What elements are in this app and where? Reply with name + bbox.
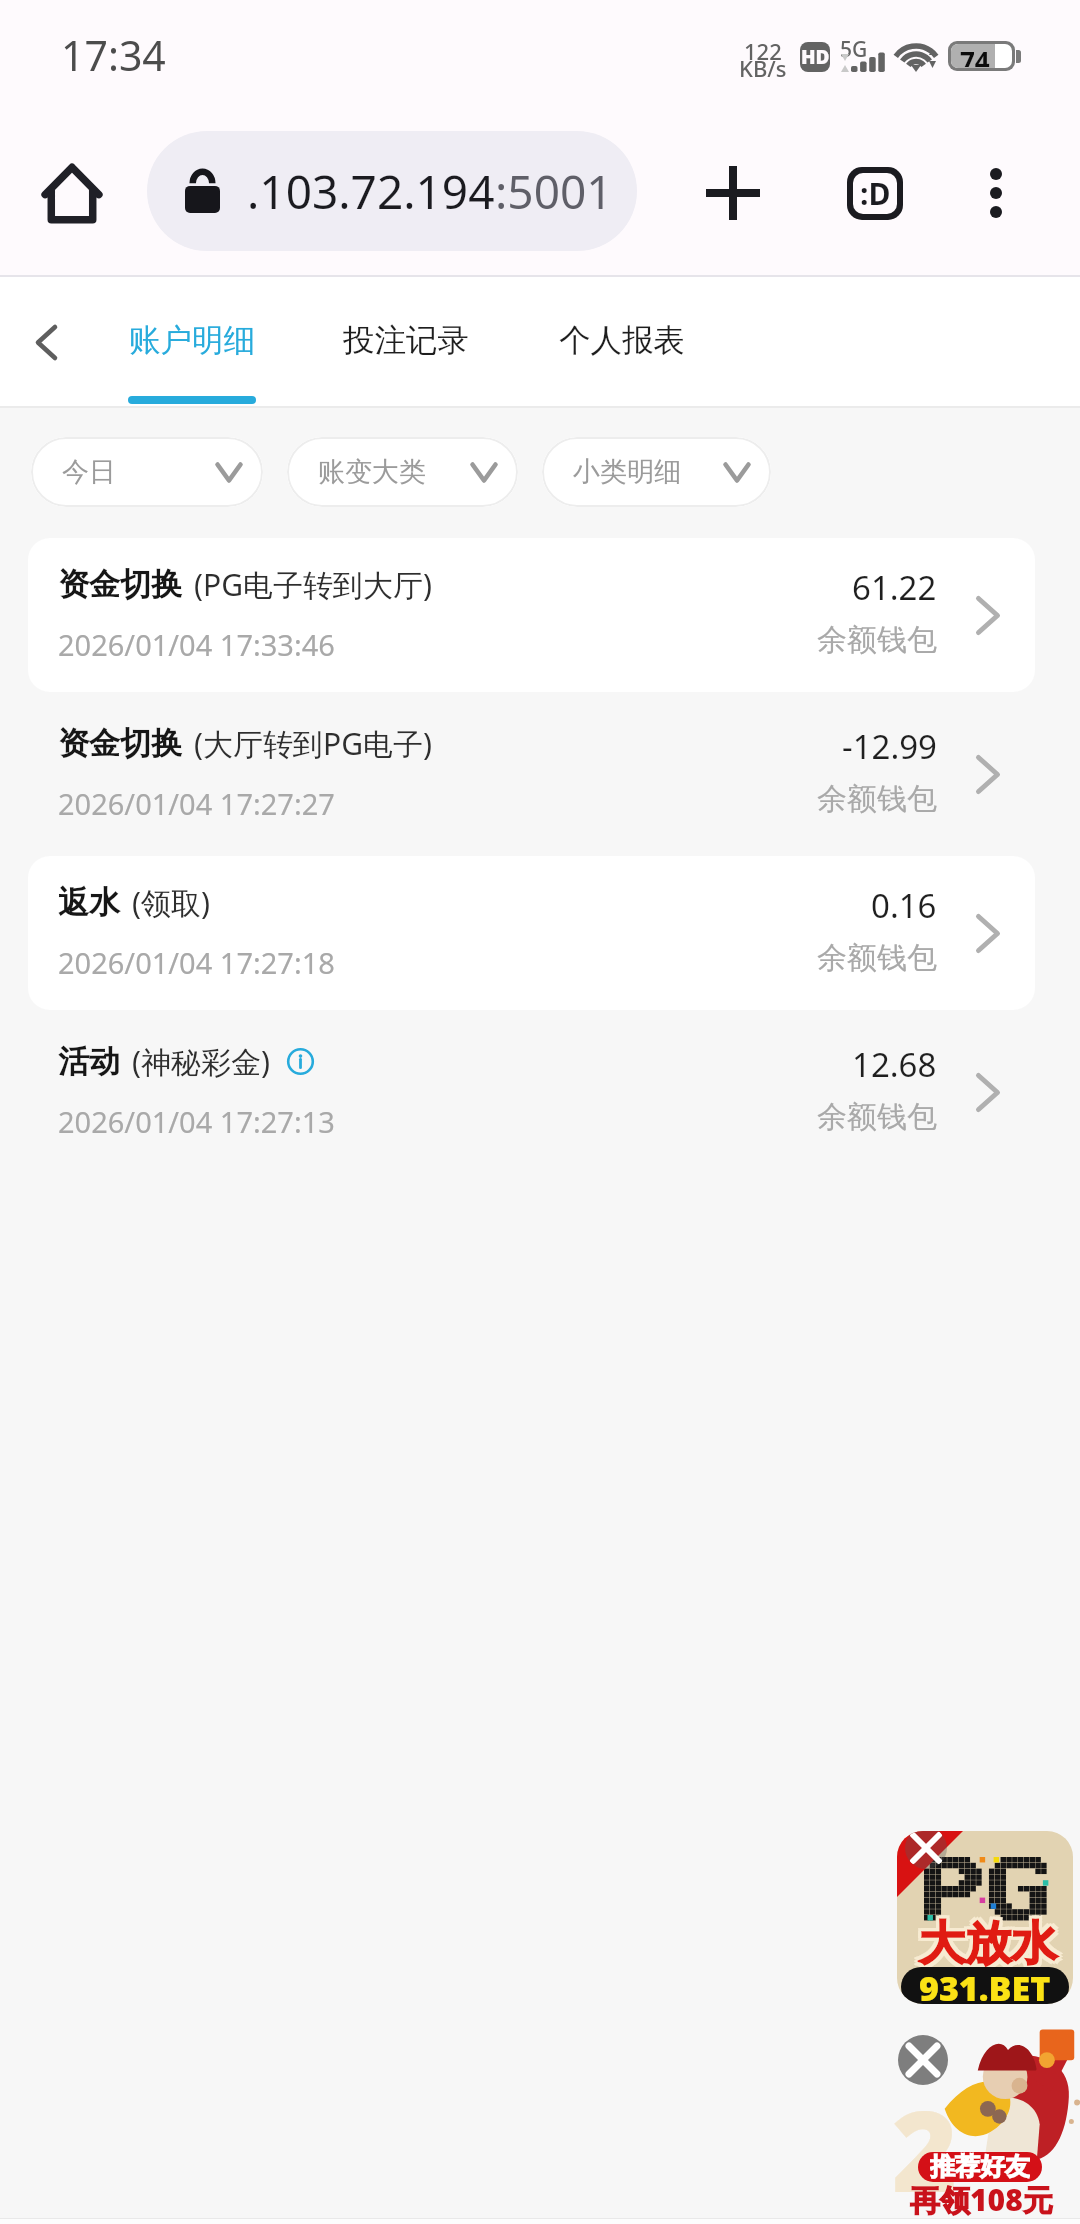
staticText: 931.BET <box>919 1967 1051 2004</box>
staticText: (神秘彩金) <box>132 1041 270 1082</box>
staticText: 61.22 <box>852 565 937 610</box>
staticText: 0.16 <box>871 883 937 928</box>
staticText: 大放水 <box>916 1912 1054 1970</box>
staticText: HD <box>801 44 830 70</box>
staticText: (大厅转到PG电子) <box>194 723 432 764</box>
staticText: 活动 <box>58 1042 120 1081</box>
staticText: 122 <box>744 36 782 66</box>
staticText: KB/s <box>739 53 787 83</box>
staticText: 资金切换 <box>58 565 182 604</box>
staticText: (领取) <box>132 882 210 923</box>
button[interactable]: 资金切换 <box>28 697 1035 851</box>
staticText: 大放水 <box>916 1918 1054 1976</box>
staticText: 余额钱包 <box>817 780 937 818</box>
staticText: 5G <box>840 35 868 64</box>
button[interactable]: 资金切换 <box>28 538 1035 692</box>
staticText: 74 <box>960 44 990 67</box>
button[interactable]: 个人报表 <box>540 277 704 406</box>
staticText: 小类明细 <box>573 455 681 489</box>
button[interactable]: 活动 <box>28 1015 1035 1169</box>
button[interactable]: New tab <box>678 138 788 248</box>
staticText: 再领108元 <box>910 2179 1053 2220</box>
staticText: 17:34 <box>61 27 166 83</box>
staticText: 余额钱包 <box>817 939 937 977</box>
staticText: (PG电子转到大厅) <box>194 564 432 605</box>
staticText: 大放水 <box>919 1912 1057 1970</box>
button[interactable]: Close advertisement <box>898 2035 948 2085</box>
staticText: 大放水 <box>916 1915 1054 1973</box>
button[interactable]: Back <box>0 294 94 390</box>
staticText: :5001 <box>495 160 613 223</box>
staticText: 2026/01/04 17:33:46 <box>58 625 335 664</box>
button[interactable]: 投注记录 <box>322 277 490 406</box>
button[interactable]: Close ad <box>905 1831 947 1869</box>
staticText: 2026/01/04 17:27:27 <box>58 784 335 823</box>
staticText: .103.72.194 <box>247 160 495 223</box>
button[interactable]: 返水 <box>28 856 1035 1010</box>
staticText: 大放水 <box>919 1915 1057 1973</box>
staticText: 推荐好友 <box>930 2152 1030 2181</box>
staticText: 大放水 <box>922 1918 1060 1976</box>
staticText: 资金切换 <box>58 724 182 763</box>
staticText: 12.68 <box>852 1042 937 1087</box>
button[interactable]: Tabs <box>820 138 930 248</box>
button[interactable]: 今日 <box>31 437 263 507</box>
staticText: 大放水 <box>919 1918 1057 1976</box>
button[interactable]: More options <box>941 138 1051 248</box>
staticText: 余额钱包 <box>817 1098 937 1136</box>
staticText: -12.99 <box>842 724 937 769</box>
staticText: 余额钱包 <box>817 621 937 659</box>
button[interactable]: Referral bonus advertisement <box>890 2030 1080 2224</box>
button[interactable]: 账变大类 <box>287 437 518 507</box>
staticText: 大放水 <box>922 1912 1060 1970</box>
staticText: 今日 <box>62 455 116 489</box>
staticText: 个人报表 <box>559 321 685 361</box>
button[interactable]: Home <box>16 137 128 249</box>
staticText: 2 <box>892 2072 958 2224</box>
staticText: 2026/01/04 17:27:18 <box>58 943 335 982</box>
button[interactable]: PG 931.BET advertisement <box>897 1831 1073 2004</box>
staticText: 2026/01/04 17:27:13 <box>58 1102 335 1141</box>
button[interactable]: .103.72.194 <box>147 131 637 251</box>
staticText: 大放水 <box>922 1915 1060 1973</box>
staticText: 账变大类 <box>318 455 426 489</box>
staticText: 返水 <box>58 883 120 922</box>
staticText: 账户明细 <box>129 321 255 361</box>
staticText: 投注记录 <box>343 321 469 361</box>
staticText: :D <box>860 173 891 214</box>
button[interactable]: 小类明细 <box>542 437 771 507</box>
button[interactable]: 账户明细 <box>110 277 274 406</box>
